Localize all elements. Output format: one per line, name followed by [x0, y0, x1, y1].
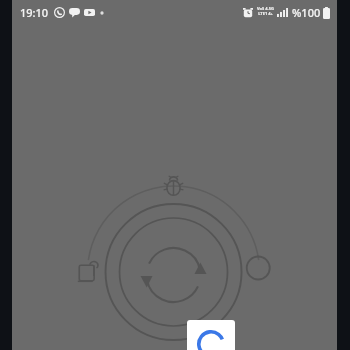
staticText: VoS 4.5G — [257, 6, 274, 11]
button[interactable] — [187, 320, 235, 350]
staticText: %100 — [292, 5, 321, 20]
staticText: 19:10 — [20, 5, 49, 20]
staticText: LTE1 4+ — [258, 11, 273, 16]
other: Sync in progress — [12, 0, 337, 350]
